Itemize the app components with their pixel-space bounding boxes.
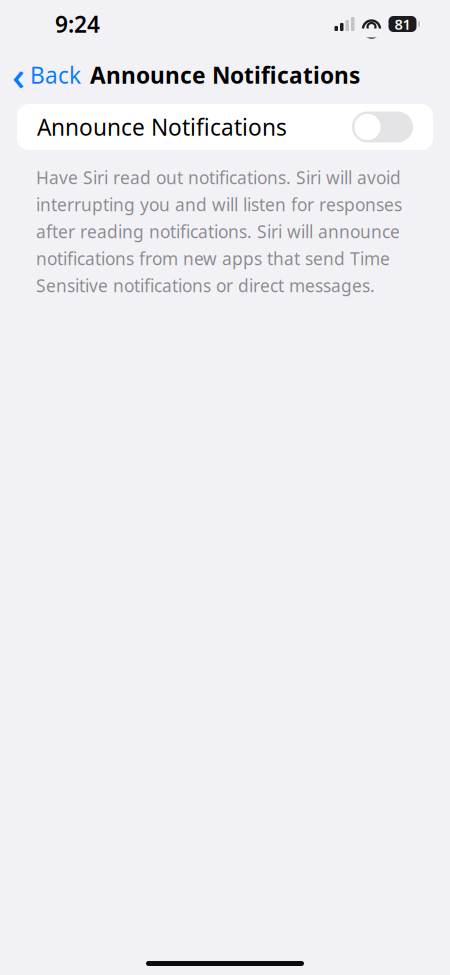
button[interactable]: Announce Notifications: [17, 104, 433, 150]
button[interactable]: ‹: [0, 42, 81, 107]
staticText: ‹: [12, 48, 25, 101]
staticText: 9:24: [55, 9, 100, 39]
staticText: Back: [30, 60, 81, 90]
staticText: 81: [394, 14, 410, 34]
staticText: Have Siri read out notifications. Siri w…: [36, 166, 402, 297]
staticText: Announce Notifications: [37, 112, 287, 142]
staticText: Announce Notifications: [90, 60, 360, 90]
